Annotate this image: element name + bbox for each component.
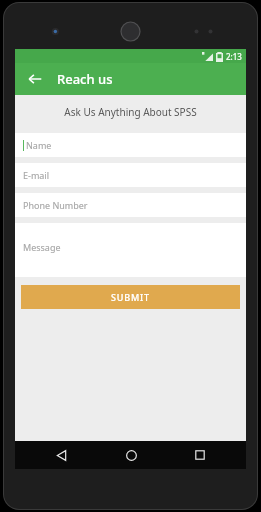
button[interactable]: SUBMIT [21,285,240,309]
button[interactable]: E-mail [15,163,246,187]
staticText: Reach us [57,70,113,88]
button[interactable]: Name [15,133,246,157]
button[interactable]: Phone Number [15,193,246,217]
staticText: Message [23,241,61,253]
button[interactable]: Back [38,441,84,469]
staticText: 2:13 [226,51,242,62]
staticText: Name [26,139,52,151]
button[interactable]: Message [15,223,246,277]
staticText: Phone Number [23,199,88,211]
button[interactable]: Recent apps [177,441,223,469]
staticText: SUBMIT [111,291,150,303]
staticText: Ask Us Anything About SPSS [15,105,246,119]
button[interactable]: Back [23,67,47,91]
staticText: E-mail [23,169,50,181]
button[interactable]: Home [108,441,154,469]
